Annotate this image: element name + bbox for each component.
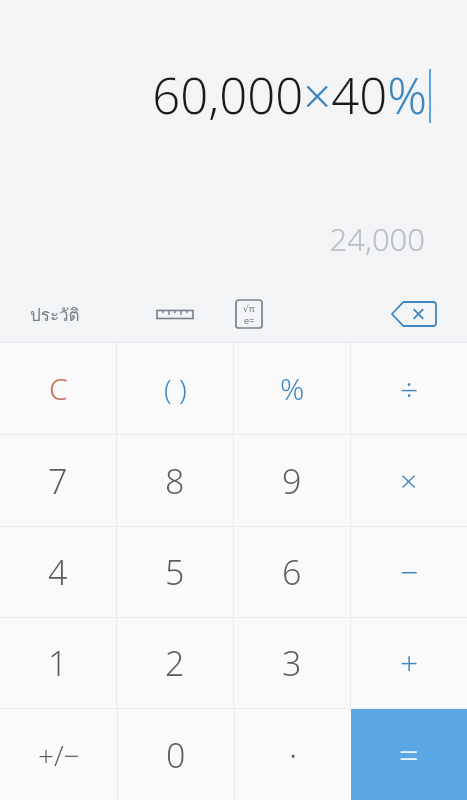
staticText: 24,000 [329, 218, 425, 260]
button[interactable]: Backspace [383, 292, 445, 336]
button[interactable]: × [351, 435, 467, 526]
staticText: √π [243, 302, 255, 314]
button[interactable]: 3 [234, 618, 350, 708]
button[interactable]: 7 [0, 435, 116, 526]
staticText: ประวัติ [30, 301, 80, 328]
staticText: 7 [48, 458, 68, 504]
staticText: 3 [282, 640, 302, 686]
staticText: ÷ [400, 367, 419, 411]
button[interactable]: 1 [0, 618, 116, 708]
staticText: 6 [282, 549, 302, 595]
staticText: 4 [48, 549, 68, 595]
button[interactable]: = [351, 709, 467, 800]
button[interactable]: 4 [0, 527, 116, 617]
button[interactable]: · [235, 709, 351, 800]
button[interactable]: Scientific functions [218, 292, 280, 336]
button[interactable]: 6 [234, 527, 350, 617]
staticText: e= [244, 314, 255, 326]
staticText: 1 [48, 640, 68, 686]
staticText: 9 [282, 458, 302, 504]
staticText: + [400, 641, 419, 685]
staticText: C [49, 368, 68, 409]
button[interactable]: 0 [118, 709, 234, 800]
staticText: × [400, 460, 418, 501]
staticText: − [400, 550, 419, 594]
button[interactable]: % [234, 343, 350, 434]
button[interactable]: ( ) [117, 343, 233, 434]
button[interactable]: − [351, 527, 467, 617]
staticText: +/− [38, 736, 80, 774]
button[interactable]: 9 [234, 435, 350, 526]
staticText: 5 [165, 549, 185, 595]
button[interactable]: + [351, 618, 467, 708]
button[interactable]: 8 [117, 435, 233, 526]
button[interactable]: ประวัติ [22, 295, 88, 334]
button[interactable]: 5 [117, 527, 233, 617]
button[interactable]: ÷ [351, 343, 467, 434]
staticText: 8 [165, 458, 185, 504]
staticText: 60,000×40% [152, 62, 427, 129]
button[interactable]: C [0, 343, 116, 434]
staticText: ( ) [164, 370, 187, 408]
staticText: · [289, 732, 298, 778]
staticText: % [280, 368, 305, 409]
button[interactable]: +/− [0, 709, 117, 800]
button[interactable]: 2 [117, 618, 233, 708]
staticText: = [399, 732, 419, 778]
staticText: 0 [166, 732, 186, 778]
staticText: 2 [165, 640, 185, 686]
button[interactable]: Unit converter [142, 292, 208, 336]
